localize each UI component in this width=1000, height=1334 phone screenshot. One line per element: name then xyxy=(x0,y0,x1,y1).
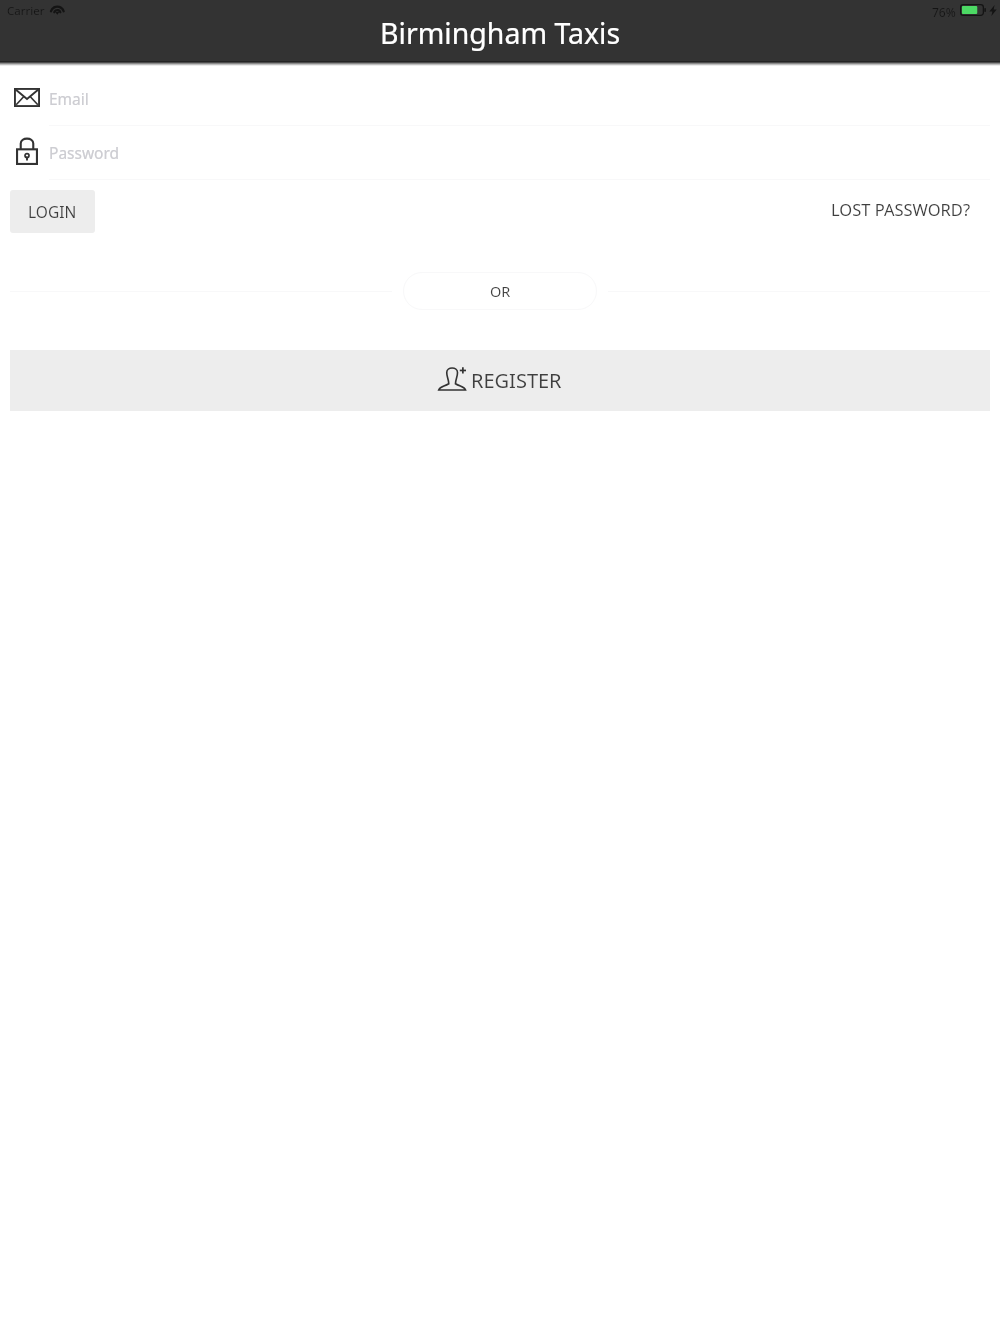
staticText: Birmingham Taxis xyxy=(380,14,621,53)
other: Wi-Fi signal xyxy=(50,1,65,15)
button[interactable]: LOGIN xyxy=(10,190,95,233)
staticText: REGISTER xyxy=(471,367,562,394)
staticText: LOST PASSWORD? xyxy=(831,198,971,220)
other: Battery 76 percent xyxy=(960,4,986,16)
staticText: 76% xyxy=(932,4,956,20)
other: Charging xyxy=(989,5,997,16)
staticText: OR xyxy=(490,281,511,301)
button[interactable]: Password input field xyxy=(0,126,1000,180)
staticText: Carrier xyxy=(7,3,45,19)
staticText: Email xyxy=(49,88,89,109)
staticText: LOGIN xyxy=(28,201,77,222)
button[interactable]: REGISTER xyxy=(10,350,990,411)
staticText: Password xyxy=(49,142,120,163)
button[interactable]: LOST PASSWORD? xyxy=(802,186,1000,232)
button[interactable]: Email input field xyxy=(0,64,1000,126)
